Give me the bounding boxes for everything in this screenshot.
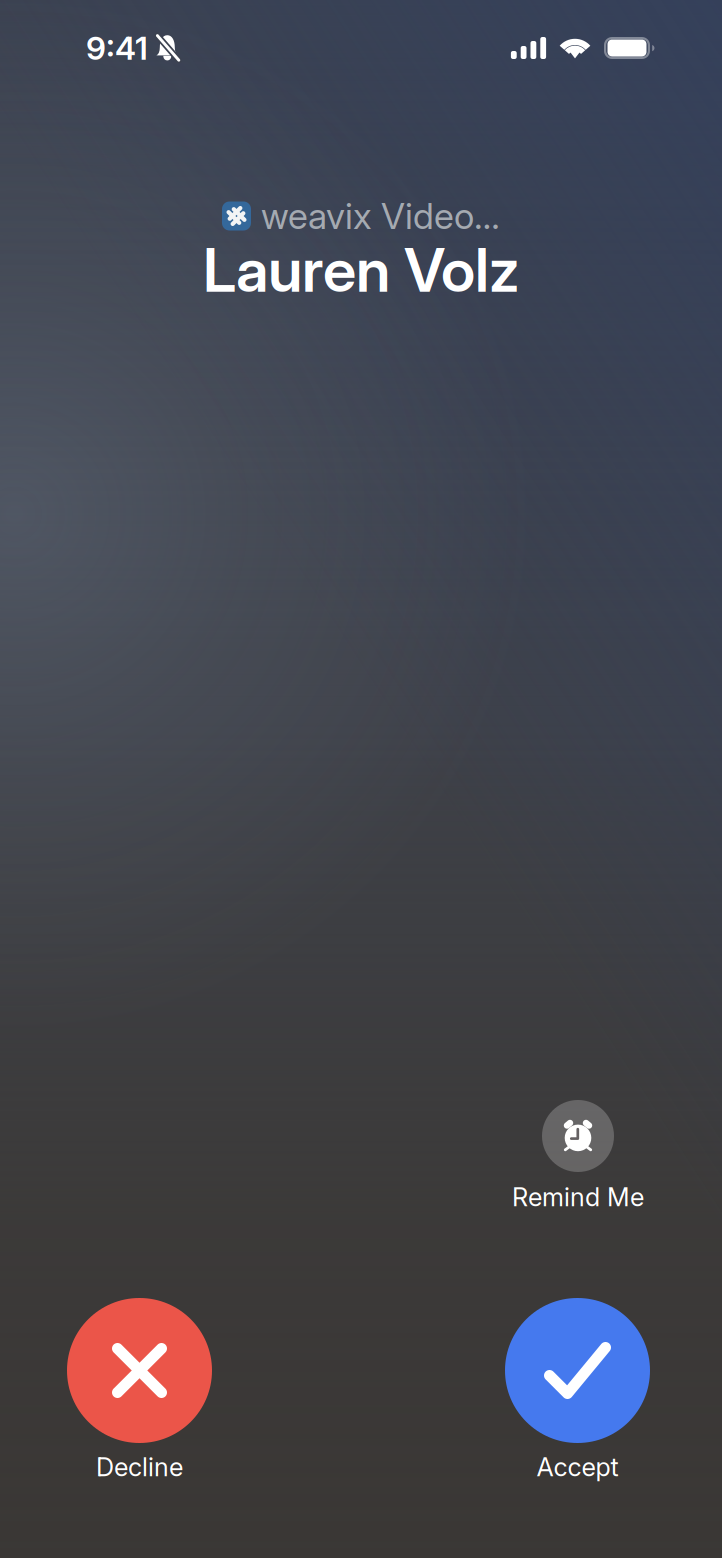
button[interactable]: Accept: [505, 1298, 650, 1478]
staticText: Decline: [96, 1452, 183, 1482]
staticText: Lauren Volz: [203, 234, 519, 306]
staticText: weavix Video…: [261, 194, 500, 238]
button[interactable]: Remind Me: [512, 1100, 644, 1208]
staticText: Accept: [536, 1452, 618, 1482]
button[interactable]: Decline: [67, 1298, 212, 1478]
staticText: Remind Me: [512, 1182, 644, 1212]
staticText: 9:41: [86, 29, 148, 67]
